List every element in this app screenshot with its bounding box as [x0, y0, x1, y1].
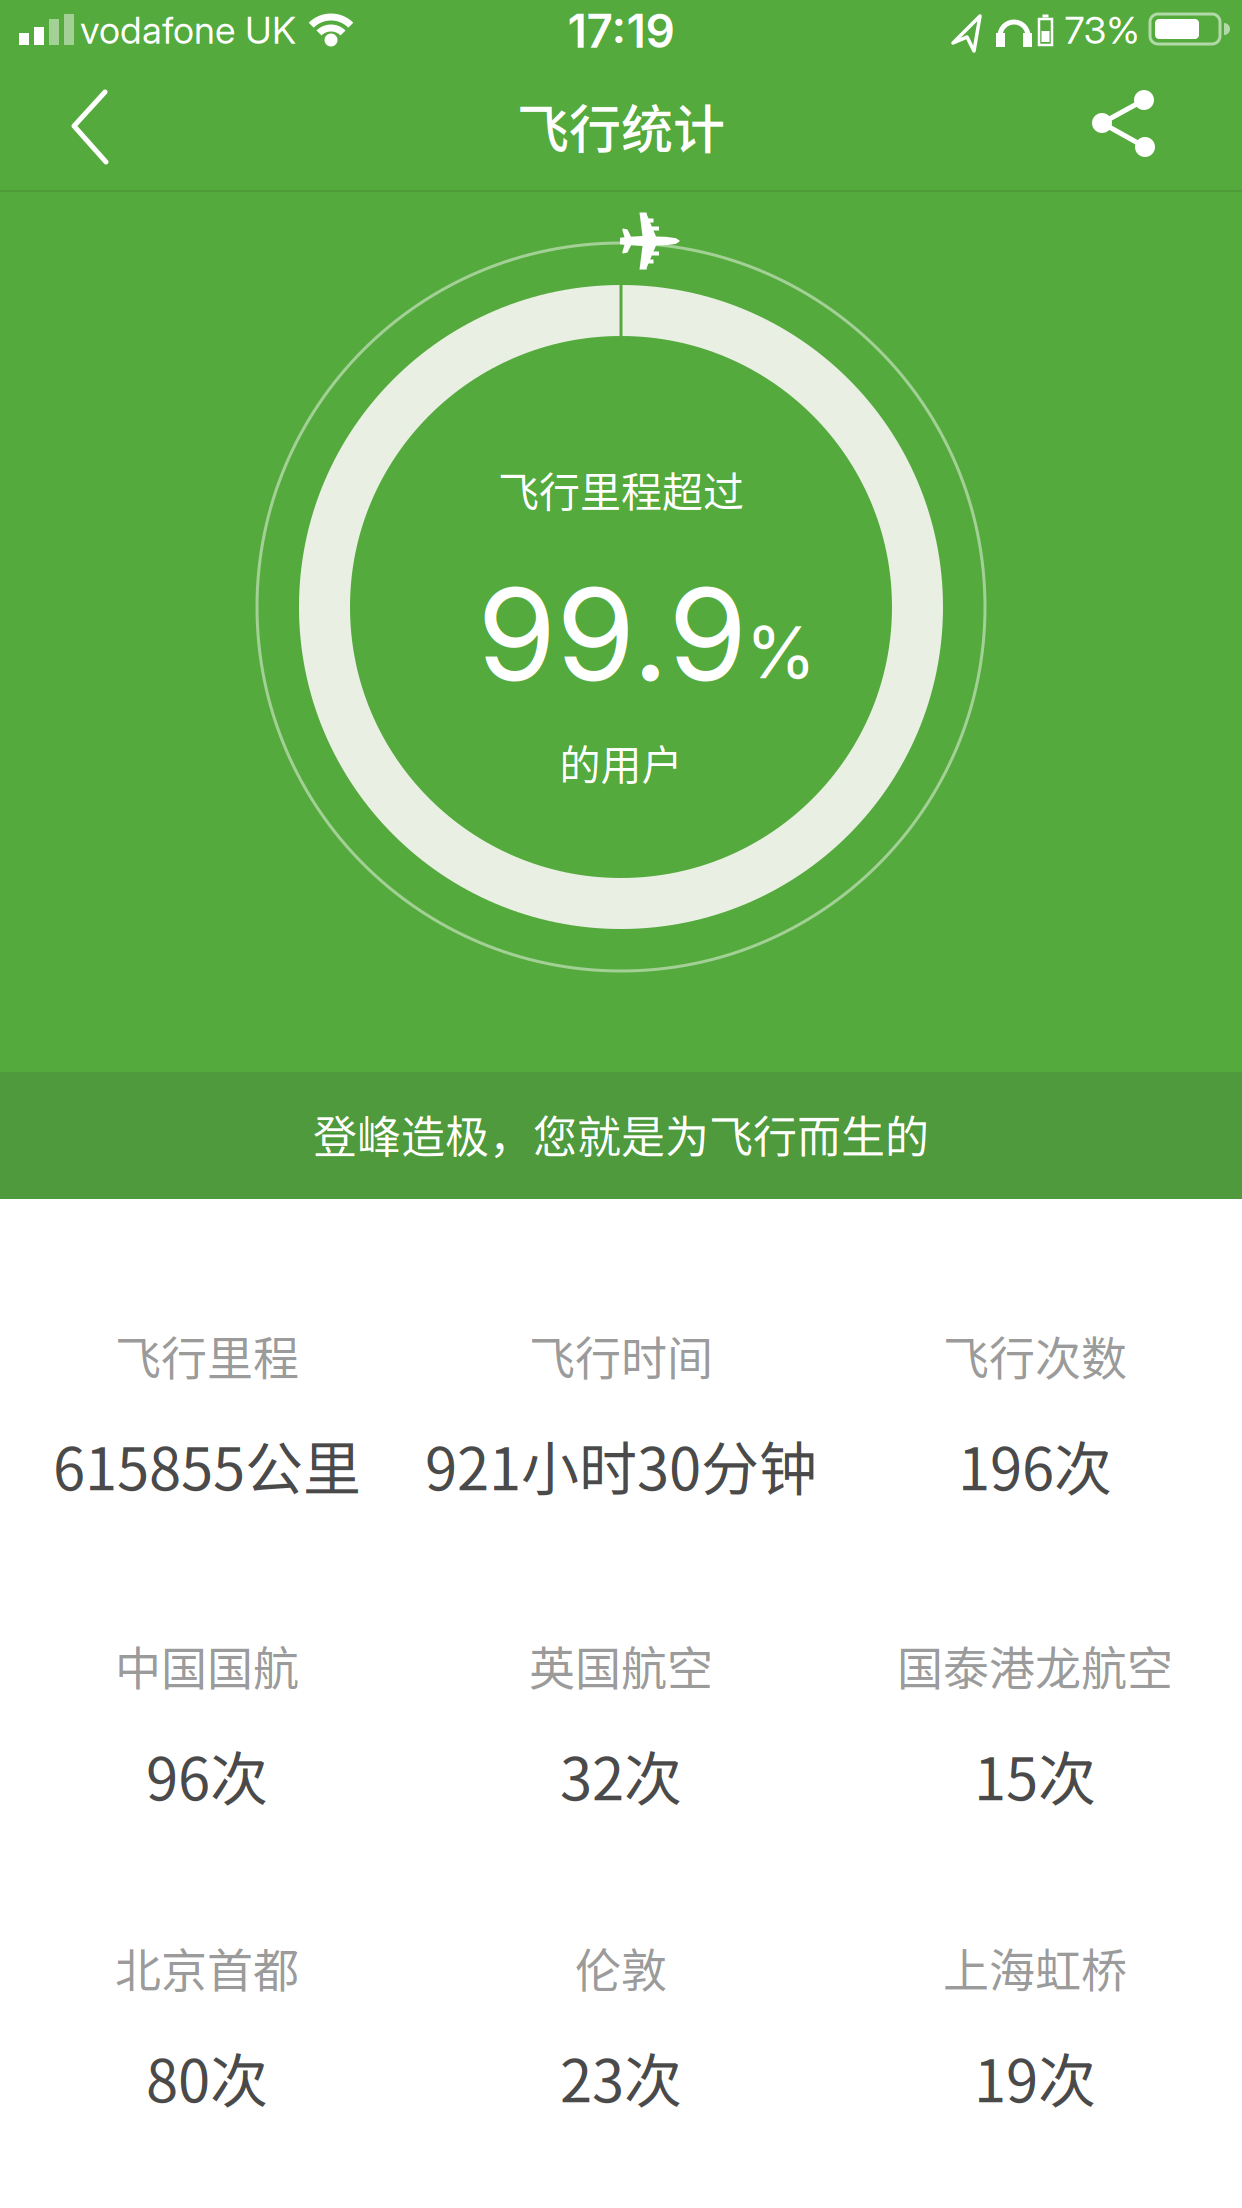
- staticText: 15次: [974, 1733, 1096, 1817]
- staticText: 英国航空: [529, 1632, 713, 1698]
- staticText: %: [745, 608, 816, 695]
- button[interactable]: [1082, 72, 1166, 176]
- staticText: 登峰造极，您就是为飞行而生的: [313, 1102, 929, 1166]
- staticText: 196次: [958, 1423, 1112, 1507]
- staticText: 615855公里: [53, 1423, 361, 1507]
- staticText: 飞行次数: [943, 1322, 1127, 1388]
- staticText: 飞行统计: [517, 88, 725, 164]
- staticText: 96次: [146, 1733, 268, 1817]
- staticText: 飞行里程超过: [498, 459, 744, 519]
- staticText: 中国国航: [115, 1632, 299, 1698]
- staticText: 921小时30分钟: [425, 1423, 817, 1507]
- staticText: 99.9: [477, 557, 747, 711]
- staticText: 73%: [1064, 7, 1139, 53]
- staticText: 伦敦: [575, 1934, 667, 2000]
- staticText: 上海虹桥: [943, 1934, 1127, 2000]
- staticText: 国泰港龙航空: [897, 1632, 1173, 1698]
- staticText: 的用户: [559, 732, 682, 792]
- staticText: 23次: [560, 2035, 682, 2119]
- staticText: 飞行时间: [529, 1322, 713, 1388]
- staticText: vodafone UK: [80, 7, 296, 53]
- staticText: 80次: [146, 2035, 268, 2119]
- staticText: 北京首都: [115, 1934, 299, 2000]
- staticText: 飞行里程: [115, 1322, 299, 1388]
- staticText: 19次: [974, 2035, 1096, 2119]
- staticText: 32次: [560, 1733, 682, 1817]
- button[interactable]: [54, 81, 144, 173]
- staticText: 17:19: [567, 3, 674, 59]
